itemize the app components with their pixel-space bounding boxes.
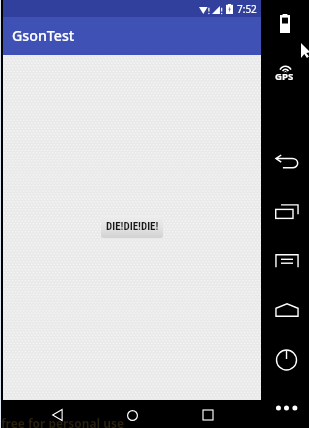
button[interactable]: DIE!DIE!DIE! <box>101 215 163 238</box>
button[interactable]: Menu <box>275 253 299 268</box>
button[interactable]: Home <box>122 405 142 425</box>
button[interactable]: Power <box>275 348 299 372</box>
staticText: 7:52 <box>237 2 257 16</box>
staticText: GsonTest <box>12 26 75 45</box>
staticText: DIE!DIE!DIE! <box>106 220 159 233</box>
button[interactable]: Recents <box>198 405 218 425</box>
button[interactable]: Overview <box>275 204 299 219</box>
staticText: GPS <box>275 70 294 83</box>
button[interactable]: Back <box>47 405 67 425</box>
button[interactable]: Rotate <box>275 303 299 317</box>
button[interactable]: More <box>274 401 298 415</box>
staticText: free for personal use <box>1 415 125 428</box>
button[interactable]: Back <box>275 155 299 171</box>
